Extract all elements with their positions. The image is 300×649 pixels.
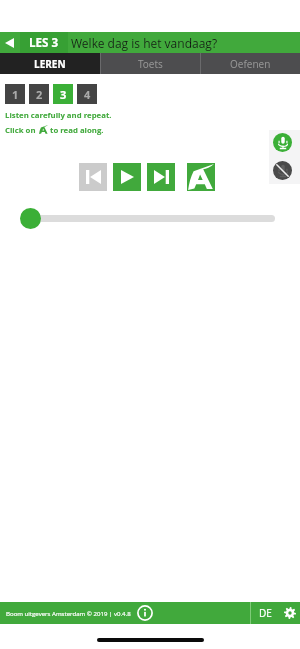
staticText: Oefenen xyxy=(230,57,271,71)
button[interactable]: DE xyxy=(251,602,279,624)
staticText: 2 xyxy=(36,87,43,102)
button[interactable]: Seek xyxy=(20,208,41,229)
button[interactable]: Previous xyxy=(79,163,107,191)
button[interactable]: Record xyxy=(273,133,292,152)
button[interactable]: Back xyxy=(0,32,21,53)
staticText: to read along. xyxy=(50,125,104,136)
staticText: DE xyxy=(259,606,272,620)
staticText: 1 xyxy=(12,87,19,102)
button[interactable]: Read along xyxy=(187,163,215,191)
staticText: Listen carefully and repeat. xyxy=(5,110,112,121)
button[interactable]: LEREN xyxy=(0,53,100,74)
staticText: LEREN xyxy=(34,57,66,71)
button[interactable]: Oefenen xyxy=(200,53,300,74)
button[interactable]: 3 xyxy=(53,84,73,104)
staticText: 3 xyxy=(60,87,67,102)
button[interactable]: LES 3 xyxy=(20,32,68,53)
button[interactable]: 1 xyxy=(5,84,25,104)
button[interactable]: Next xyxy=(147,163,175,191)
button[interactable]: 4 xyxy=(77,84,97,104)
staticText: Welke dag is het vandaag? xyxy=(71,35,218,51)
staticText: Boom uitgevers Amsterdam © 2019 | v0.4.8 xyxy=(6,609,131,617)
button[interactable]: Toets xyxy=(100,53,200,74)
staticText: Click on xyxy=(5,125,36,136)
button[interactable]: 2 xyxy=(29,84,49,104)
button[interactable]: Settings xyxy=(279,602,300,624)
button[interactable]: Play xyxy=(113,163,141,191)
button[interactable]: Mute microphone xyxy=(273,161,292,180)
staticText: Toets xyxy=(138,57,163,71)
button[interactable]: Info xyxy=(134,602,156,624)
staticText: 4 xyxy=(84,87,91,102)
staticText: LES 3 xyxy=(29,35,59,51)
